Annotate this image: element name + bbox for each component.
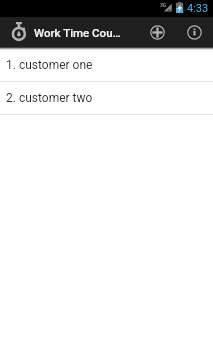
staticText: 2. customer two: [6, 91, 93, 105]
button[interactable]: Info: [176, 17, 213, 47]
button[interactable]: 2. customer two: [0, 82, 213, 114]
staticText: 1. customer one: [6, 58, 93, 72]
button[interactable]: Add customer: [139, 17, 176, 47]
staticText: 3G: [160, 2, 167, 8]
staticText: Work Time Cou…: [34, 26, 121, 39]
staticText: 4:33: [187, 2, 209, 15]
button[interactable]: 1. customer one: [0, 49, 213, 81]
